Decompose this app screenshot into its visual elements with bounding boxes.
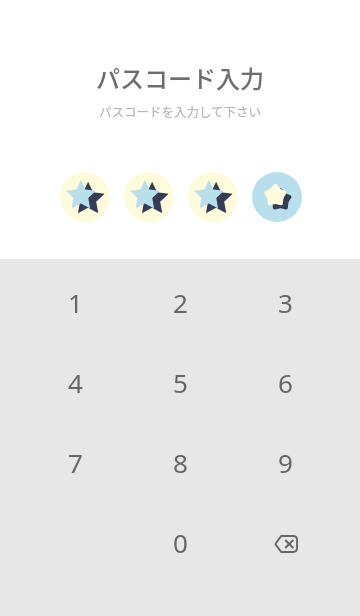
button[interactable]: 7 bbox=[23, 422, 128, 502]
button[interactable]: Backspace bbox=[233, 502, 338, 582]
button[interactable]: 8 bbox=[128, 422, 233, 502]
staticText: 4 bbox=[68, 365, 83, 400]
staticText: 9 bbox=[278, 445, 293, 480]
button[interactable]: 9 bbox=[233, 422, 338, 502]
button[interactable]: 4 bbox=[23, 342, 128, 422]
staticText: 6 bbox=[278, 365, 293, 400]
button[interactable]: 5 bbox=[128, 342, 233, 422]
staticText: パスコードを入力して下さい bbox=[0, 102, 360, 120]
staticText: 3 bbox=[278, 285, 293, 320]
button[interactable]: 0 bbox=[128, 502, 233, 582]
button[interactable]: 3 bbox=[233, 262, 338, 342]
staticText: 1 bbox=[68, 285, 83, 320]
button[interactable]: 6 bbox=[233, 342, 338, 422]
staticText: 8 bbox=[173, 445, 188, 480]
staticText: 2 bbox=[173, 285, 188, 320]
button[interactable]: 1 bbox=[23, 262, 128, 342]
staticText: 7 bbox=[68, 445, 83, 480]
button[interactable]: 2 bbox=[128, 262, 233, 342]
staticText: パスコード入力 bbox=[0, 60, 360, 95]
staticText: 0 bbox=[173, 525, 188, 560]
staticText: 5 bbox=[173, 365, 188, 400]
